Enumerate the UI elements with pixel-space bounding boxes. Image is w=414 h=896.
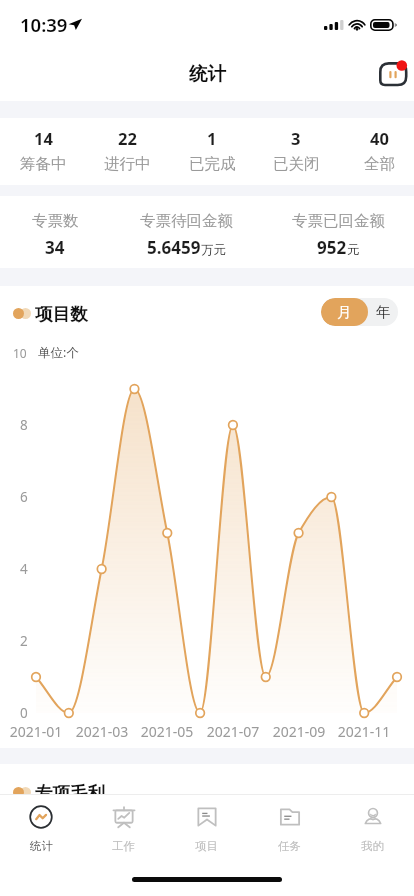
staticText: 进行中 (104, 154, 151, 174)
button[interactable]: 统计 (0, 795, 82, 862)
staticText: 项目数 (35, 303, 88, 325)
button[interactable]: 22 (85, 118, 169, 185)
button[interactable]: 项目 (165, 795, 248, 862)
staticText: 元 (347, 242, 360, 258)
staticText: 万元 (201, 242, 226, 258)
staticText: 2021-05 (137, 722, 197, 741)
button[interactable]: 1 (170, 118, 254, 185)
staticText: 14 (34, 127, 53, 149)
staticText: 2 (20, 632, 28, 650)
staticText: 已完成 (189, 154, 236, 174)
button[interactable]: 任务 (248, 795, 331, 862)
staticText: 2021-11 (334, 722, 394, 741)
staticText: 2021-03 (72, 722, 132, 741)
staticText: 2021-09 (269, 722, 329, 741)
staticText: 已关闭 (273, 154, 320, 174)
staticText: 0 (20, 704, 28, 722)
button[interactable]: 消息 (374, 57, 410, 93)
staticText: 工作 (112, 839, 135, 853)
staticText: 2021-01 (6, 722, 66, 741)
button[interactable]: 工作 (82, 795, 165, 862)
staticText: 10 (13, 345, 27, 361)
staticText: 年 (376, 303, 391, 321)
staticText: 项目 (195, 839, 218, 853)
staticText: 统计 (189, 62, 226, 85)
button[interactable]: 我的 (331, 795, 414, 862)
staticText: 单位:个 (38, 344, 79, 361)
button[interactable]: 年 (368, 298, 398, 326)
button[interactable]: 3 (254, 118, 338, 185)
button[interactable]: 专票待回金额 (110, 196, 262, 268)
staticText: 8 (20, 416, 28, 434)
staticText: 统计 (30, 839, 53, 853)
staticText: 2021-07 (203, 722, 263, 741)
staticText: 40 (370, 127, 389, 149)
staticText: 任务 (278, 839, 301, 853)
staticText: 全部 (364, 154, 395, 174)
staticText: 专票已回金额 (292, 211, 385, 231)
button[interactable]: 14 (1, 118, 85, 185)
staticText: 4 (20, 560, 28, 578)
staticText: 我的 (361, 839, 384, 853)
button[interactable]: 专票已回金额 (262, 196, 414, 268)
button[interactable]: 月 (321, 298, 368, 326)
staticText: 筹备中 (20, 154, 67, 174)
staticText: 5.6459 (147, 236, 201, 259)
staticText: 6 (20, 488, 28, 506)
staticText: 952 (317, 236, 347, 259)
staticText: 1 (207, 127, 217, 149)
staticText: 专票数 (32, 211, 79, 231)
staticText: 专票待回金额 (140, 211, 233, 231)
button[interactable]: 专票数 (0, 196, 110, 268)
staticText: 月 (337, 303, 352, 321)
staticText: 22 (118, 127, 137, 149)
button[interactable]: 40 (337, 118, 414, 185)
staticText: 专项毛利 (35, 782, 105, 804)
staticText: 10:39 (20, 12, 68, 37)
staticText: 3 (291, 127, 301, 149)
staticText: 34 (45, 236, 65, 259)
